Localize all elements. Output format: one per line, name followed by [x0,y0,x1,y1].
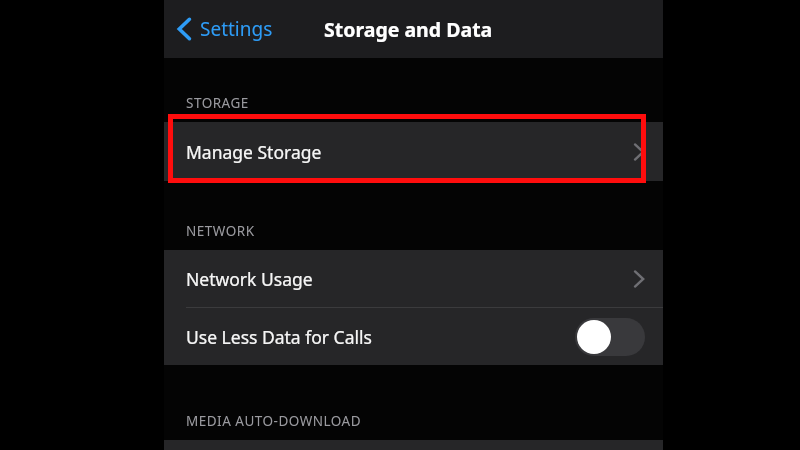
button[interactable]: Manage Storage [164,122,663,181]
staticText: Network Usage [186,267,313,291]
button[interactable]: Use Less Data for Calls [164,308,663,365]
button[interactable]: Back [178,16,279,42]
button[interactable]: Network Usage [164,250,663,307]
staticText: Storage and Data [324,16,493,43]
staticText: Settings [200,16,273,42]
staticText: MEDIA AUTO-DOWNLOAD [186,412,362,430]
staticText: NETWORK [186,222,255,240]
other: Back [178,18,191,40]
staticText: Use Less Data for Calls [186,325,372,349]
staticText: STORAGE [186,94,249,112]
staticText: Manage Storage [186,140,322,164]
